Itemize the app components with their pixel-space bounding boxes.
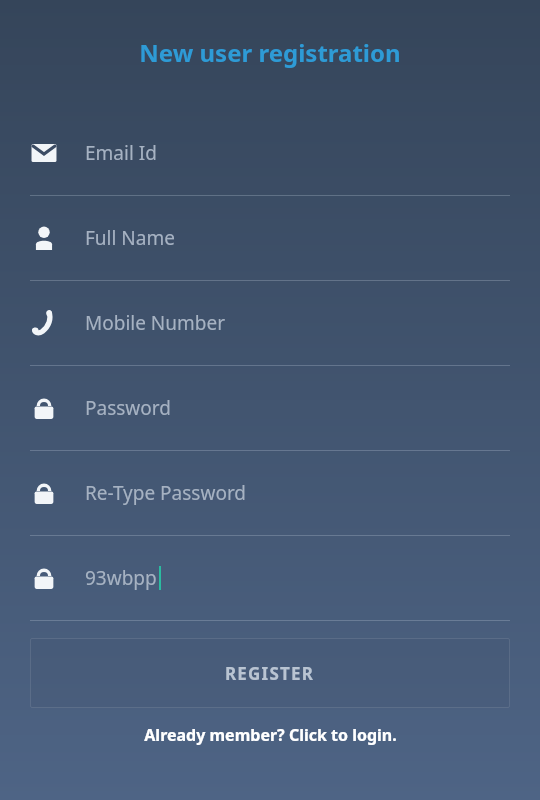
other: Mobile Number xyxy=(30,309,58,337)
staticText: Mobile Number xyxy=(85,310,226,336)
staticText: Full Name xyxy=(85,225,175,251)
other: Re-Type Password xyxy=(30,479,58,507)
staticText: Email Id xyxy=(85,140,157,166)
staticText: New user registration xyxy=(139,36,401,69)
button[interactable]: Mobile Number xyxy=(0,281,540,366)
button[interactable]: Password xyxy=(0,366,540,451)
staticText: REGISTER xyxy=(225,662,315,685)
staticText: Re-Type Password xyxy=(85,480,247,506)
button[interactable]: 93wbpp xyxy=(0,536,540,621)
other: Email Id xyxy=(30,139,58,167)
button[interactable]: Full Name xyxy=(0,196,540,281)
staticText: Password xyxy=(85,395,171,421)
other: Password xyxy=(30,394,58,422)
button[interactable]: Re-Type Password xyxy=(0,451,540,536)
other: 93wbpp xyxy=(30,564,58,592)
button[interactable]: Email Id xyxy=(0,111,540,196)
button[interactable]: REGISTER xyxy=(30,638,510,708)
button[interactable]: Already member? Click to login. xyxy=(0,724,540,746)
staticText: 93wbpp xyxy=(85,565,157,591)
staticText: Already member? Click to login. xyxy=(144,724,397,746)
other: Full Name xyxy=(30,224,58,252)
